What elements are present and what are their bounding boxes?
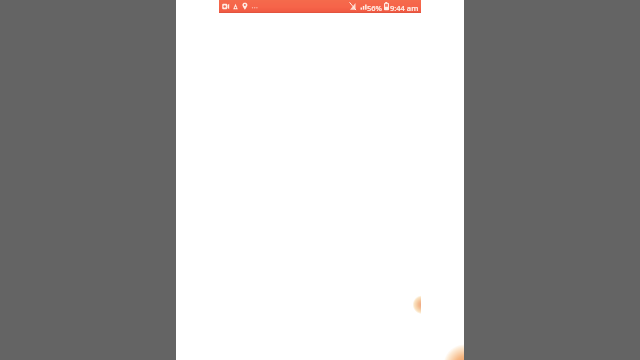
button[interactable]: Add bbox=[402, 295, 421, 314]
staticText: 9:44 am bbox=[390, 3, 419, 13]
staticText: 56% bbox=[367, 3, 382, 13]
